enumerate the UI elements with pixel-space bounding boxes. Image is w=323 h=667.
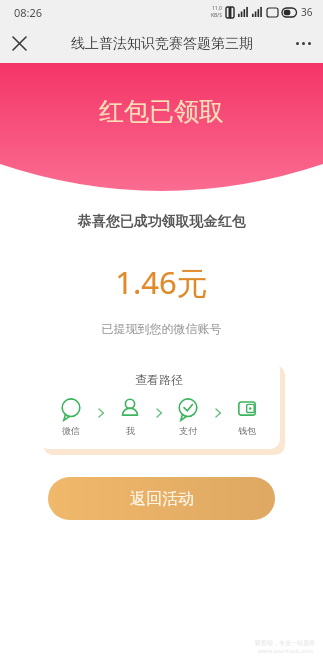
button[interactable]: 返回活动 [48,477,275,520]
button[interactable]: More options [284,24,323,63]
staticText: 我 [126,425,135,436]
staticText: KB/S [211,12,222,19]
staticText: 查看路径 [135,372,183,387]
staticText: 微信 [62,425,80,436]
staticText: 恭喜您已成功领取现金红包 [0,213,323,231]
staticText: 钱包 [238,425,256,436]
button[interactable]: 查看路径 [38,359,280,449]
staticText: 1.46元 [0,261,323,303]
staticText: 线上普法知识竞赛答题第三期 [71,35,253,53]
staticText: 聚客啦，专业一站服务 [255,639,315,647]
staticText: 11.0 [212,5,222,12]
button[interactable]: Close [0,24,39,63]
staticText: www.zuanlook.com [258,647,313,655]
staticText: 红包已领取 [99,96,224,127]
staticText: 08:26 [14,5,43,20]
staticText: 已提现到您的微信账号 [0,321,323,336]
staticText: 返回活动 [130,489,194,509]
staticText: 36 [301,5,313,19]
staticText: 支付 [179,425,197,436]
